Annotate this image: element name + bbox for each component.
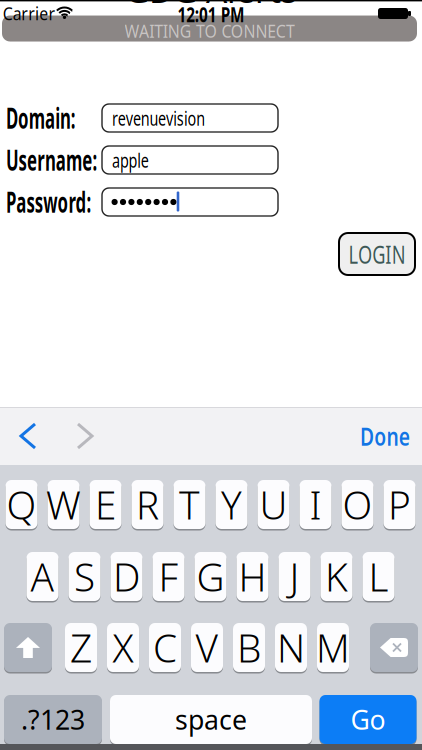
button[interactable]: P <box>383 480 415 529</box>
button[interactable]: space <box>110 695 312 744</box>
staticText: U <box>259 479 287 530</box>
button[interactable]: Next field <box>70 416 100 456</box>
button[interactable]: W <box>47 480 79 529</box>
staticText: F <box>158 551 178 602</box>
staticText: B <box>237 622 261 673</box>
button[interactable]: H <box>236 552 268 601</box>
staticText: I <box>309 479 321 530</box>
staticText: revenuevision <box>112 105 241 131</box>
staticText: Q <box>6 479 36 530</box>
staticText: A <box>30 551 54 602</box>
button[interactable]: O <box>341 480 373 529</box>
button[interactable]: B <box>233 623 265 672</box>
staticText: V <box>195 622 218 673</box>
staticText: S <box>74 551 95 602</box>
button[interactable]: .?123 <box>4 695 102 744</box>
staticText: Done <box>352 419 418 453</box>
button[interactable]: Q <box>5 480 37 529</box>
staticText: T <box>179 479 200 530</box>
button[interactable]: J <box>278 552 310 601</box>
button[interactable]: Y <box>215 480 247 529</box>
button[interactable]: Shift <box>4 623 52 672</box>
button[interactable]: Done <box>352 419 418 453</box>
staticText: K <box>325 551 348 602</box>
staticText: Go <box>350 702 385 737</box>
button[interactable]: A <box>26 552 58 601</box>
button[interactable]: F <box>152 552 184 601</box>
staticText: Y <box>221 479 242 530</box>
button[interactable]: L <box>362 552 394 601</box>
staticText: 12:01 PM <box>164 0 257 28</box>
staticText: H <box>238 551 266 602</box>
staticText: .?123 <box>21 702 85 737</box>
button[interactable]: R <box>131 480 163 529</box>
staticText: Password: <box>6 183 148 221</box>
button[interactable]: G <box>194 552 226 601</box>
staticText: M <box>316 622 350 673</box>
button[interactable]: X <box>107 623 139 672</box>
button[interactable]: T <box>173 480 205 529</box>
staticText: Z <box>70 622 92 673</box>
button[interactable]: Delete <box>370 623 418 672</box>
button[interactable]: E <box>89 480 121 529</box>
staticText: G <box>196 551 224 602</box>
button[interactable]: S <box>68 552 100 601</box>
staticText: GDG Alerts <box>125 0 297 12</box>
button[interactable]: apple <box>102 146 278 174</box>
staticText: LOGIN <box>337 237 416 271</box>
staticText: X <box>112 622 133 673</box>
button[interactable]: Previous field <box>13 416 43 456</box>
staticText: Domain: <box>6 99 122 137</box>
staticText: W <box>46 479 81 530</box>
button[interactable]: C <box>149 623 181 672</box>
button[interactable]: V <box>191 623 223 672</box>
button[interactable] <box>102 188 278 216</box>
staticText: apple <box>112 147 163 173</box>
button[interactable]: K <box>320 552 352 601</box>
staticText: L <box>368 551 388 602</box>
staticText: E <box>95 479 116 530</box>
button[interactable]: M <box>317 623 349 672</box>
button[interactable]: Z <box>65 623 97 672</box>
staticText: R <box>136 479 159 530</box>
staticText: P <box>388 479 411 530</box>
staticText: space <box>175 702 247 737</box>
button[interactable]: revenuevision <box>102 104 278 132</box>
button[interactable]: U <box>257 480 289 529</box>
staticText: O <box>342 479 372 530</box>
button[interactable]: N <box>275 623 307 672</box>
staticText: D <box>113 551 140 602</box>
button[interactable]: D <box>110 552 142 601</box>
staticText: WAITING TO CONNECT <box>109 18 309 43</box>
staticText: C <box>153 622 177 673</box>
staticText: Carrier <box>0 1 60 25</box>
button[interactable]: LOGIN <box>339 233 415 275</box>
staticText: Username: <box>6 141 158 179</box>
button[interactable]: I <box>299 480 331 529</box>
staticText: N <box>277 622 305 673</box>
button[interactable]: Go <box>319 695 416 744</box>
staticText: J <box>289 551 299 602</box>
